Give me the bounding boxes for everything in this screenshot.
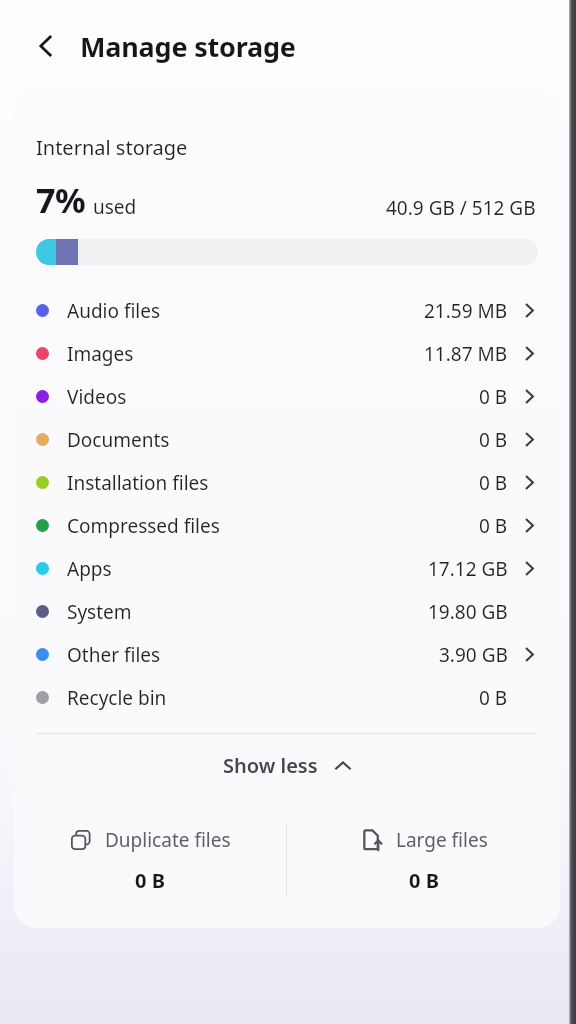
staticText: Audio files (67, 298, 161, 324)
button[interactable]: Other files (14, 633, 560, 676)
staticText: 7% (36, 177, 86, 223)
staticText: Internal storage (36, 134, 188, 161)
staticText: System (67, 599, 132, 625)
staticText: 19.80 GB (428, 599, 508, 625)
button[interactable]: Compressed files (14, 504, 560, 547)
button[interactable]: Apps (14, 547, 560, 590)
button[interactable]: Documents (14, 418, 560, 461)
button[interactable]: System (14, 590, 560, 633)
staticText: 21.59 MB (424, 298, 508, 324)
staticText: Images (67, 341, 134, 367)
staticText: Show less (223, 752, 318, 779)
staticText: Manage storage (80, 28, 296, 65)
staticText: Apps (67, 556, 112, 582)
button[interactable]: Recycle bin (14, 676, 560, 719)
button[interactable]: Duplicate files (14, 810, 286, 910)
button[interactable]: Large files (287, 810, 560, 910)
button[interactable]: Images (14, 332, 560, 375)
staticText: Installation files (67, 470, 209, 496)
staticText: 0 B (479, 685, 508, 711)
staticText: 0 B (409, 867, 439, 894)
staticText: Large files (396, 827, 488, 853)
button[interactable]: Show less (14, 734, 560, 796)
staticText: 0 B (479, 470, 508, 496)
staticText: Compressed files (67, 513, 220, 539)
button[interactable]: Back (22, 22, 70, 70)
staticText: 0 B (135, 867, 165, 894)
button[interactable]: Videos (14, 375, 560, 418)
staticText: 3.90 GB (439, 642, 508, 668)
button[interactable]: Audio files (14, 289, 560, 332)
staticText: 40.9 GB / 512 GB (386, 195, 536, 221)
staticText: Other files (67, 642, 161, 668)
staticText: used (93, 194, 137, 220)
staticText: 17.12 GB (428, 556, 508, 582)
staticText: Documents (67, 427, 170, 453)
staticText: Videos (67, 384, 127, 410)
button[interactable]: Installation files (14, 461, 560, 504)
staticText: 0 B (479, 513, 508, 539)
staticText: 0 B (479, 384, 508, 410)
staticText: 11.87 MB (424, 341, 508, 367)
staticText: Duplicate files (105, 827, 231, 853)
staticText: 0 B (479, 427, 508, 453)
staticText: Recycle bin (67, 685, 167, 711)
